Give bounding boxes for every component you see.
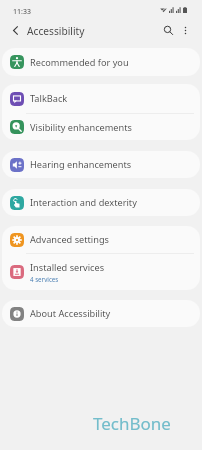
button[interactable]: Installed services — [2, 254, 200, 290]
staticText: Advanced settings — [30, 233, 109, 246]
staticText: Accessibility — [27, 24, 85, 38]
staticText: About Accessibility — [30, 307, 111, 320]
staticText: Interaction and dexterity — [30, 196, 137, 209]
button[interactable]: TalkBack — [2, 84, 200, 113]
button[interactable]: Visibility enhancements — [2, 114, 200, 140]
button[interactable]: About Accessibility — [2, 300, 200, 327]
staticText: Installed services — [30, 261, 105, 274]
button[interactable]: Hearing enhancements — [2, 151, 200, 178]
button[interactable]: Recommended for you — [2, 48, 200, 76]
button[interactable]: Advanced settings — [2, 226, 200, 253]
staticText: 4 services — [30, 275, 59, 283]
staticText: Visibility enhancements — [30, 121, 132, 134]
button[interactable]: Interaction and dexterity — [2, 189, 200, 216]
staticText: Hearing enhancements — [30, 158, 132, 171]
button[interactable]: Back — [8, 23, 23, 38]
staticText: TechBone — [93, 412, 171, 435]
button[interactable]: Search — [160, 22, 176, 38]
button[interactable]: More options — [177, 22, 193, 38]
staticText: Recommended for you — [30, 56, 129, 69]
staticText: TalkBack — [30, 92, 68, 105]
staticText: 11:33 — [13, 7, 31, 17]
